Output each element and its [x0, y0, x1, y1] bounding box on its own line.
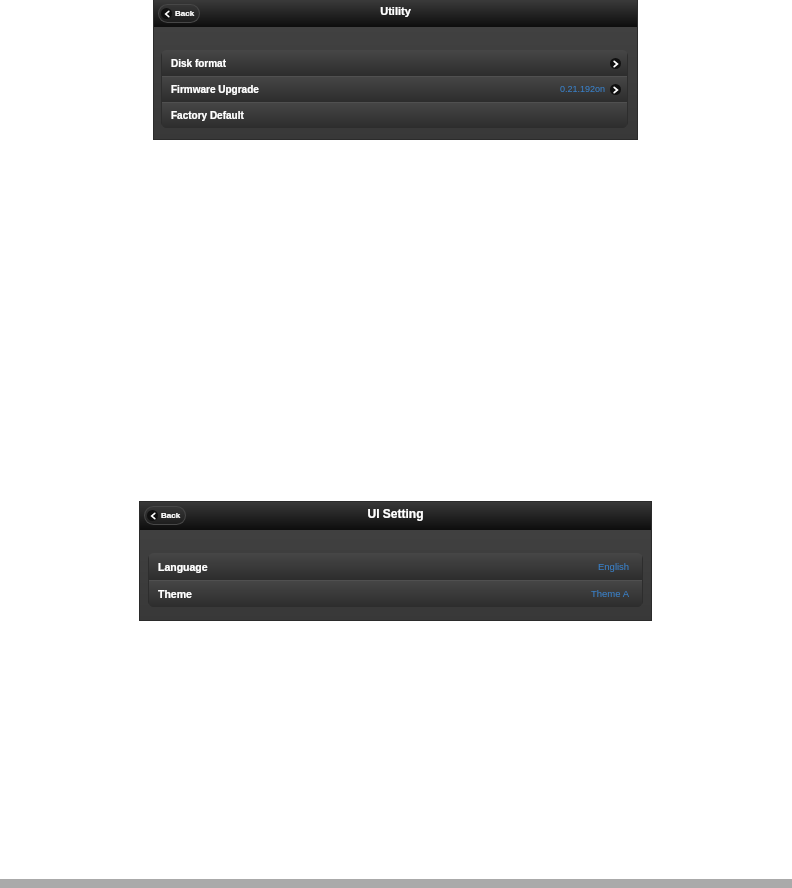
staticText: Language	[158, 561, 208, 573]
button[interactable]: Factory Default	[161, 102, 628, 128]
staticText: Factory Default	[171, 110, 244, 121]
staticText: Disk format	[171, 58, 227, 69]
button[interactable]: Disk format	[161, 50, 628, 76]
staticText: Firmware Upgrade	[171, 84, 259, 95]
staticText: 0.21.192on	[560, 84, 606, 94]
button[interactable]: Firmware Upgrade	[161, 76, 628, 102]
staticText: Theme	[158, 588, 192, 600]
staticText: Back	[175, 9, 195, 18]
button[interactable]: Language	[148, 553, 643, 580]
staticText: Back	[161, 511, 181, 520]
staticText: Utility	[153, 5, 638, 17]
button[interactable]: Back	[144, 506, 186, 525]
button[interactable]: Theme	[148, 580, 643, 607]
staticText: English	[598, 561, 630, 572]
staticText: Theme A	[591, 588, 630, 599]
staticText: UI Setting	[139, 507, 652, 520]
button[interactable]: Back	[158, 4, 200, 23]
